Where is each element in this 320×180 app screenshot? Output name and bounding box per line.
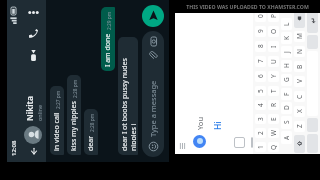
staticText: 1 [256,145,265,149]
staticText: You [195,116,205,130]
staticText: G [282,77,291,82]
staticText: 2:27 pm [55,90,62,109]
staticText: T [269,89,278,93]
staticText: D [282,105,291,110]
staticText: 6 [256,74,265,78]
staticText: 2 [256,131,265,135]
button[interactable] [193,135,206,148]
button[interactable]: F [281,88,292,100]
button[interactable]: W [268,128,279,138]
staticText: J [282,51,291,53]
staticText: Z [295,124,304,128]
staticText: online [36,104,43,121]
staticText: Nikita [24,96,36,121]
button[interactable]: X [294,106,305,117]
staticText: X [295,109,304,113]
button[interactable]: H [281,60,292,72]
button[interactable]: More options [25,5,41,21]
button[interactable]: I am done [103,11,113,67]
button[interactable]: 3 [255,114,266,124]
button[interactable]: O [268,26,279,37]
button[interactable]: 1 [255,142,266,152]
button[interactable]: P [268,11,279,22]
button[interactable]: M [294,31,305,42]
button[interactable]: B [294,61,305,72]
button[interactable]: kiss my nipples [69,79,79,151]
staticText: Y [269,74,278,78]
button[interactable]: N [294,46,305,57]
staticText: 2:29 pm [106,11,113,30]
button[interactable]: Send [142,5,164,27]
button[interactable]: dear [86,113,96,151]
button[interactable]: K [281,32,292,44]
button[interactable]: Profile photo [24,126,42,144]
staticText: V [295,79,304,83]
staticText: kiss my nipples [69,101,79,151]
button[interactable]: D [281,102,292,114]
staticText: W [269,129,278,136]
button[interactable]: L [281,18,292,30]
staticText: in video call [52,112,62,151]
button[interactable]: Voice call [24,25,42,43]
staticText: dear [86,135,96,151]
button[interactable]: 6 [255,71,266,82]
button[interactable]: 2 [255,128,266,138]
staticText: dear I ot boobs pussy nudes nipples i ne… [120,41,136,151]
staticText: F [282,92,291,96]
staticText: 7 [256,59,265,63]
button[interactable]: 7 [255,56,266,67]
button[interactable]: 8 [255,41,266,52]
staticText: M [295,33,304,39]
button[interactable]: R [268,100,279,110]
staticText: 12:08 [10,140,18,156]
staticText: N [295,49,304,54]
button[interactable]: 5 [255,86,266,96]
button[interactable]: 9 [255,26,266,37]
button[interactable]: 0 [255,11,266,22]
button[interactable]: I [268,41,279,52]
staticText: E [269,117,278,121]
button[interactable]: in video call [52,90,62,151]
staticText: A [282,135,291,140]
button[interactable]: Enter [307,10,318,33]
button[interactable]: Backspace [294,10,305,28]
button[interactable]: T [268,86,279,96]
button[interactable]: Attachment 1 [251,137,253,148]
button[interactable]: 4 [255,100,266,110]
button[interactable]: Video call [24,47,42,65]
button[interactable]: Z [294,121,305,132]
button[interactable]: Y [268,71,279,82]
button[interactable]: Shift [294,135,305,153]
button[interactable]: Type a message [142,37,164,151]
button[interactable]: S [281,116,292,129]
staticText: Type a message [148,60,158,137]
staticText: I [269,45,278,48]
staticText: H [282,63,291,68]
button[interactable]: Back [28,146,39,157]
staticText: 0 [256,14,265,18]
staticText: C [295,94,304,99]
staticText: 2:28 pm [72,79,79,98]
staticText: S [282,120,291,124]
staticText: THIS VIDEO WAS UPLOADED TO XHAMSTER.COM [186,3,309,10]
staticText: 8 [256,44,265,48]
button[interactable]: Menu [179,143,186,149]
button[interactable]: J [281,46,292,58]
button[interactable]: Q [268,142,279,152]
button[interactable]: Attachment 0 [234,137,245,148]
button[interactable]: U [268,56,279,67]
button[interactable]: V [294,76,305,87]
staticText: I am done [103,33,113,67]
staticText: 9 [256,29,265,33]
staticText: U [269,59,278,64]
button[interactable]: C [294,91,305,102]
button[interactable]: E [268,114,279,124]
button[interactable]: G [281,74,292,86]
button[interactable]: Nikita [24,65,43,121]
button[interactable]: dear I ot boobs pussy nudes nipples i ne… [120,41,136,151]
button[interactable]: A [281,131,292,144]
